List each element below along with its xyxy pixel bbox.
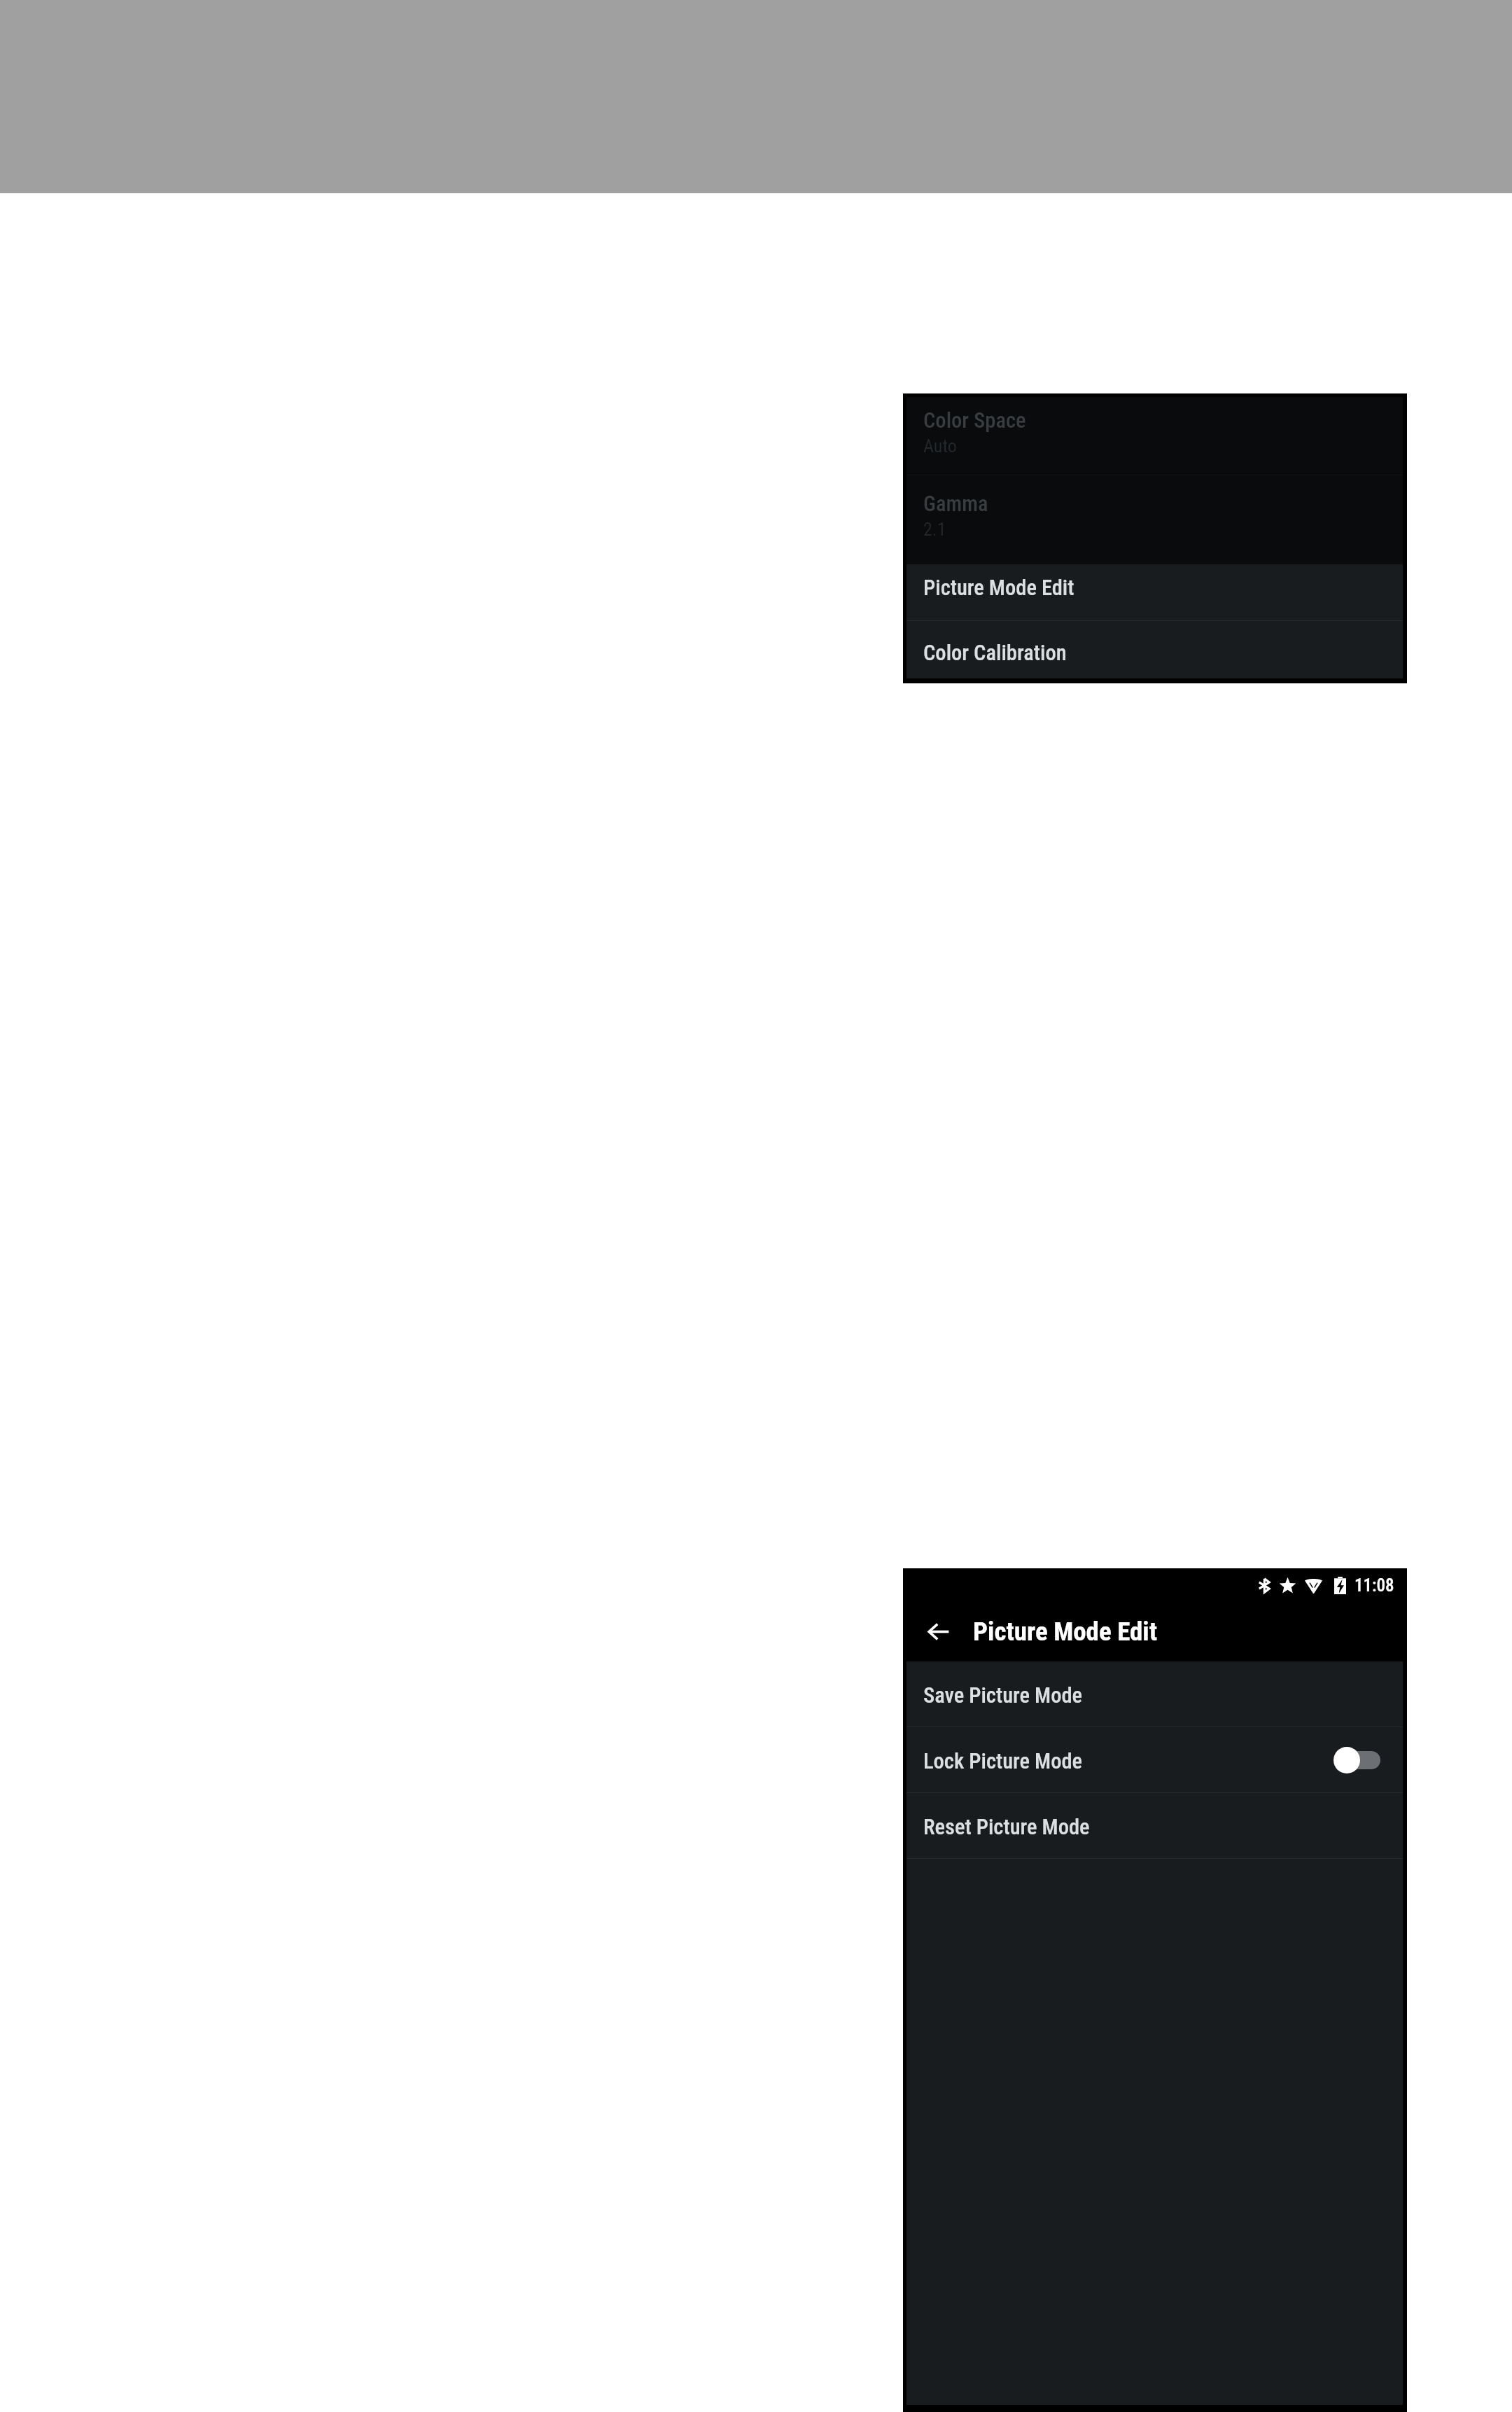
staticText: Auto xyxy=(923,435,957,456)
button[interactable]: Reset Picture Mode xyxy=(906,1793,1403,1858)
staticText: 11:08 xyxy=(1354,1575,1394,1596)
staticText: Reset Picture Mode xyxy=(923,1815,1403,1840)
staticText: Lock Picture Mode xyxy=(923,1749,1334,1774)
staticText: Color Calibration xyxy=(923,641,1067,666)
staticText: Color Space xyxy=(923,408,1026,433)
staticText: Picture Mode Edit xyxy=(973,1617,1158,1647)
staticText: Gamma xyxy=(923,492,988,517)
staticText: Picture Mode Edit xyxy=(923,576,1074,601)
staticText: 2.1 xyxy=(923,519,946,540)
staticText: Save Picture Mode xyxy=(923,1683,1403,1708)
button[interactable]: Color Calibration xyxy=(906,621,1403,678)
button[interactable]: Picture Mode Edit xyxy=(906,564,1403,620)
button[interactable]: Lock Picture Mode xyxy=(906,1727,1403,1792)
button[interactable]: Save Picture Mode xyxy=(906,1661,1403,1727)
button[interactable]: Back xyxy=(918,1611,958,1652)
